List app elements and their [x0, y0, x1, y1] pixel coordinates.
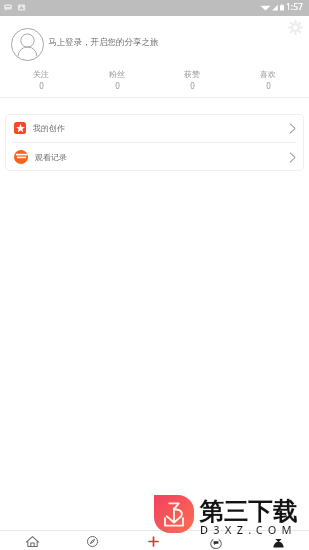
button[interactable]: Add: [125, 532, 181, 550]
button[interactable]: Settings: [286, 18, 304, 36]
button[interactable]: 我的创作: [5, 114, 304, 142]
button[interactable]: Discover: [64, 532, 120, 550]
staticText: 获赞: [184, 69, 200, 79]
staticText: 0: [39, 80, 44, 91]
button[interactable]: Profile: [250, 533, 306, 550]
button[interactable]: 观看记录: [5, 143, 304, 171]
button[interactable]: Messages: [188, 534, 244, 550]
staticText: 喜欢: [260, 69, 276, 79]
button[interactable]: Home: [4, 532, 60, 550]
staticText: 1:57: [286, 1, 303, 13]
staticText: 0: [266, 80, 271, 91]
button[interactable]: 关注: [6, 69, 76, 97]
staticText: 粉丝: [109, 69, 125, 79]
staticText: D3XZ.COM: [200, 522, 297, 537]
button[interactable]: 获赞: [157, 69, 227, 97]
button[interactable]: 粉丝: [82, 69, 152, 97]
button[interactable]: 喜欢: [233, 69, 303, 97]
staticText: 马上登录，开启您的分享之旅: [48, 37, 159, 48]
staticText: 0: [190, 80, 195, 91]
staticText: 我的创作: [33, 123, 65, 133]
staticText: 观看记录: [35, 152, 67, 162]
staticText: 0: [115, 80, 120, 91]
staticText: 第三下载: [199, 496, 297, 527]
staticText: 关注: [33, 69, 49, 79]
